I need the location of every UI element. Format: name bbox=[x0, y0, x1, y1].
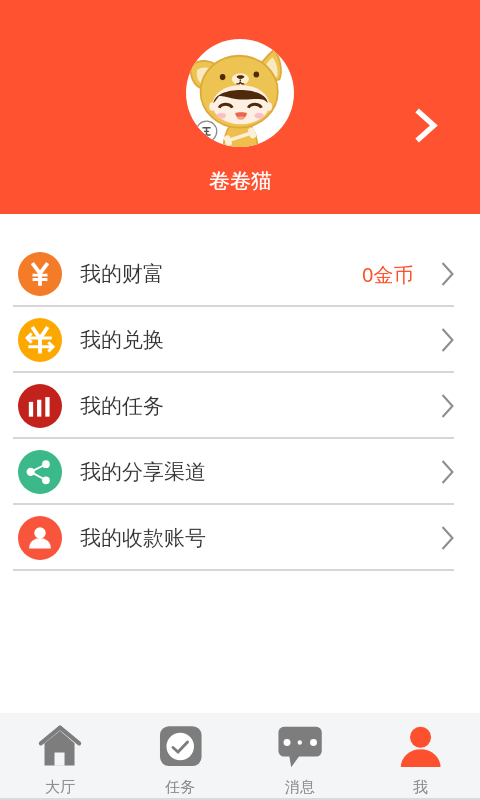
staticText: 卷卷猫 bbox=[209, 168, 272, 194]
button[interactable]: 我的分享渠道 bbox=[0, 439, 480, 505]
other: Home bbox=[38, 724, 82, 768]
button[interactable]: Profile details bbox=[400, 100, 450, 150]
staticText: 我的分享渠道 bbox=[80, 459, 206, 485]
staticText: 我 bbox=[413, 778, 428, 797]
staticText: 任务 bbox=[165, 778, 195, 797]
staticText: 我的任务 bbox=[80, 393, 164, 419]
button[interactable]: 我的收款账号 bbox=[0, 505, 480, 571]
button[interactable]: Messages bbox=[240, 713, 360, 800]
staticText: 我的收款账号 bbox=[80, 525, 206, 551]
button[interactable]: 我的财富 bbox=[0, 241, 480, 307]
other: Messages bbox=[278, 724, 322, 768]
button[interactable]: 我的兑换 bbox=[0, 307, 480, 373]
staticText: 大厅 bbox=[45, 778, 75, 797]
button[interactable]: Home bbox=[0, 713, 120, 800]
button[interactable]: Tasks bbox=[120, 713, 240, 800]
button[interactable]: 我的任务 bbox=[0, 373, 480, 439]
staticText: 消息 bbox=[285, 778, 315, 797]
button[interactable]: Profile bbox=[360, 713, 480, 800]
other: Profile bbox=[398, 724, 442, 768]
staticText: 0金币 bbox=[362, 261, 414, 288]
other: Tasks bbox=[158, 724, 202, 768]
button[interactable]: Avatar bbox=[186, 39, 294, 147]
staticText: 我的兑换 bbox=[80, 327, 164, 353]
staticText: 我的财富 bbox=[80, 261, 164, 287]
